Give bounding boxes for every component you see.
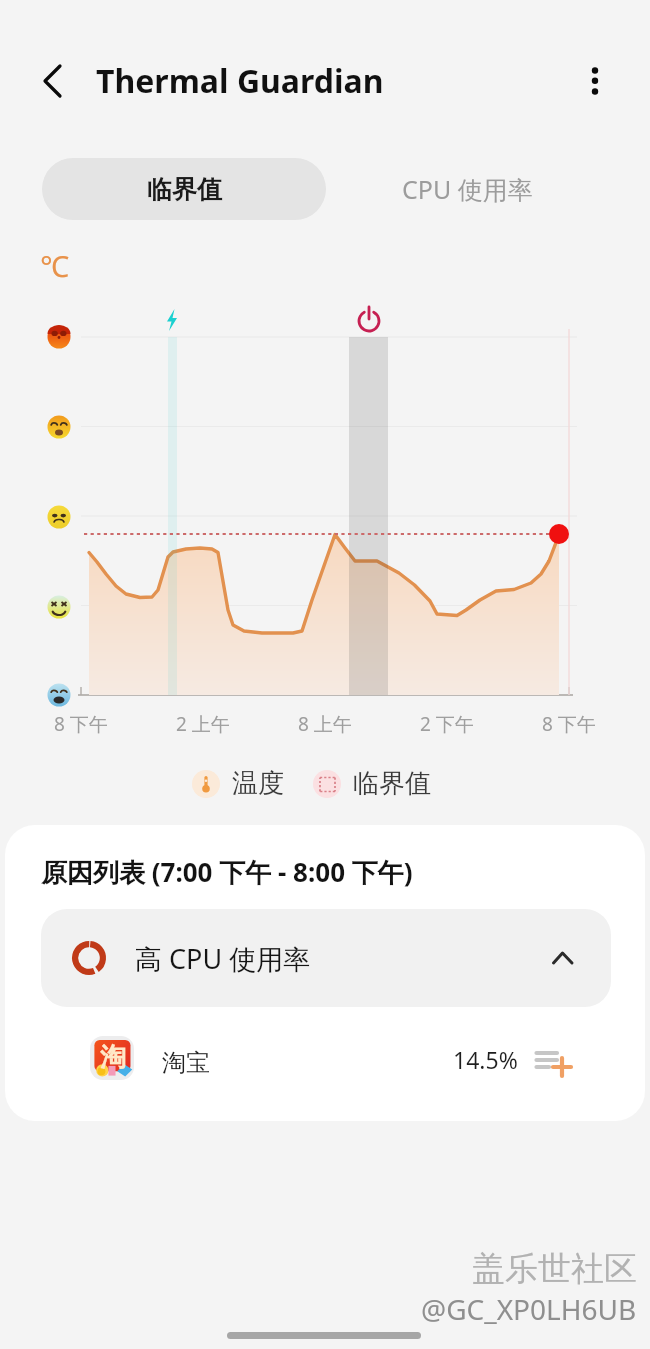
staticText: 8 上午	[298, 711, 352, 737]
staticText: 高 CPU 使用率	[135, 940, 311, 977]
staticText: @GC_XP0LH6UB	[421, 1290, 637, 1328]
button[interactable]: Back	[28, 62, 78, 112]
button[interactable]: 高 CPU 使用率	[41, 909, 611, 1007]
button[interactable]: 淘	[5, 1027, 645, 1099]
staticText: 14.5%	[453, 1044, 518, 1075]
staticText: 临界值	[353, 767, 431, 800]
staticText: 原因列表 (7:00 下午 - 8:00 下午)	[41, 854, 413, 890]
staticText: CPU 使用率	[402, 172, 533, 206]
button[interactable]: 临界值	[42, 158, 326, 220]
staticText: 2 上午	[176, 711, 230, 737]
staticText: ℃	[40, 246, 69, 285]
staticText: 8 下午	[542, 711, 596, 737]
staticText: 盖乐世社区	[472, 1248, 637, 1290]
staticText: 临界值	[147, 174, 222, 205]
button[interactable]: CPU 使用率	[326, 158, 609, 220]
staticText: 淘宝	[162, 1048, 210, 1078]
staticText: Thermal Guardian	[96, 59, 384, 103]
staticText: 2 下午	[420, 711, 474, 737]
button[interactable]: More options	[571, 48, 619, 96]
staticText: 8 下午	[54, 711, 108, 737]
staticText: 温度	[232, 767, 284, 800]
staticText: 淘	[100, 1041, 126, 1074]
